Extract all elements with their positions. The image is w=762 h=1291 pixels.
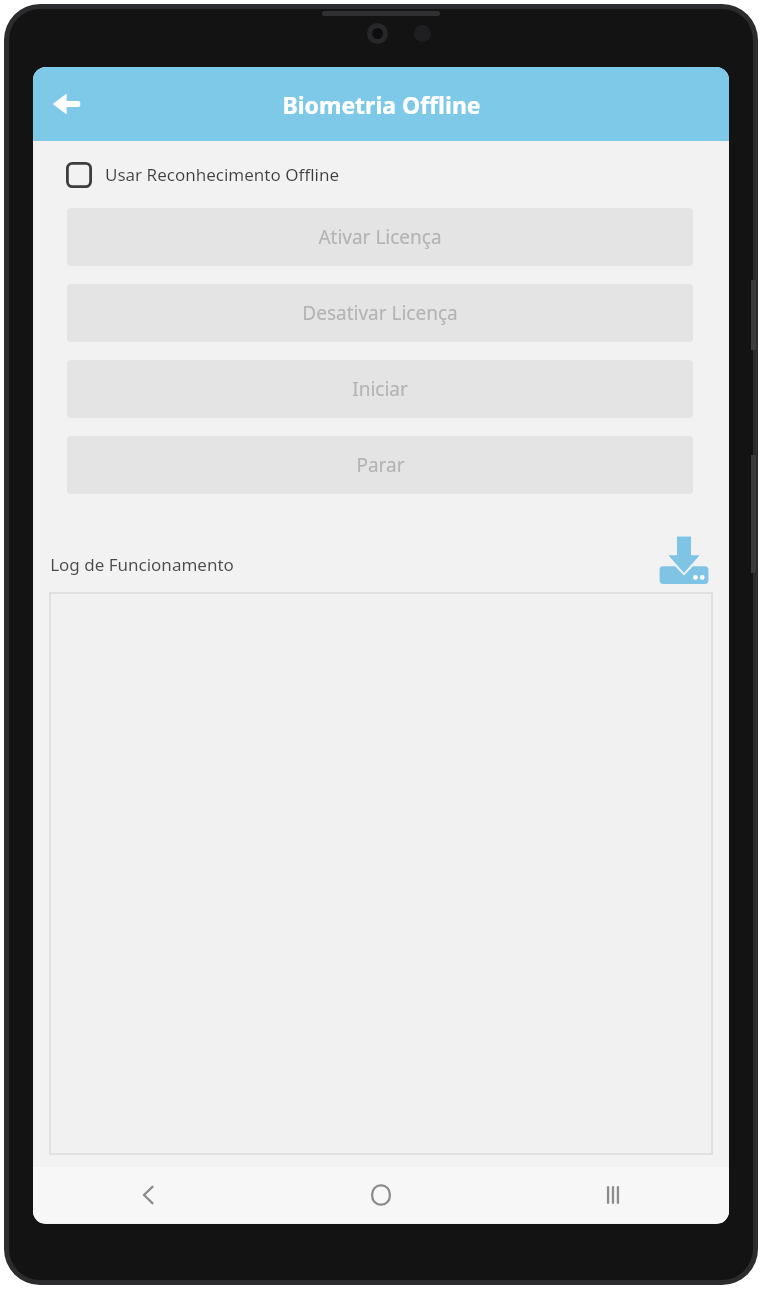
staticText: Parar — [356, 452, 405, 478]
staticText: Biometria Offline — [282, 89, 481, 120]
button[interactable]: Ativar Licença — [67, 208, 693, 266]
staticText: Iniciar — [352, 376, 408, 402]
button[interactable]: Iniciar — [67, 360, 693, 418]
staticText: Desativar Licença — [302, 300, 458, 326]
button[interactable]: Download log — [655, 532, 713, 590]
button[interactable]: Back — [33, 1167, 265, 1223]
staticText: Ativar Licença — [318, 224, 442, 250]
button[interactable]: Recent apps — [497, 1167, 729, 1223]
staticText: Usar Reconhecimento Offline — [105, 163, 339, 186]
button[interactable]: Back — [39, 75, 97, 133]
button[interactable]: Desativar Licença — [67, 284, 693, 342]
button[interactable]: Home — [265, 1167, 497, 1223]
button[interactable]: Usar Reconhecimento Offline — [33, 141, 729, 208]
staticText: Log de Funcionamento — [50, 553, 234, 576]
button[interactable]: Parar — [67, 436, 693, 494]
